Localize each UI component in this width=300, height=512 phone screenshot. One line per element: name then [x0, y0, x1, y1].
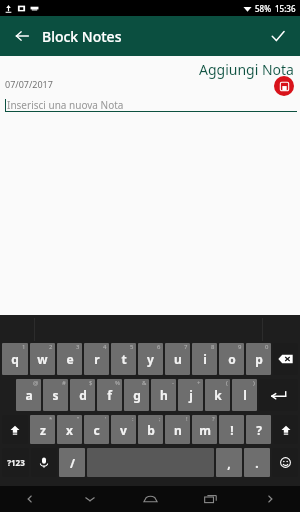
- staticText: 58%: [255, 3, 271, 14]
- staticText: c: [93, 422, 100, 438]
- button[interactable]: q: [2, 343, 28, 375]
- staticText: 7: [184, 343, 188, 351]
- button[interactable]: Hide keyboard: [60, 486, 120, 512]
- staticText: m: [199, 422, 211, 438]
- staticText: 15:36: [275, 3, 296, 14]
- staticText: k: [214, 387, 222, 403]
- button[interactable]: e: [57, 343, 82, 375]
- button[interactable]: o: [219, 343, 244, 375]
- staticText: x: [66, 422, 73, 438]
- button[interactable]: Save: [274, 76, 294, 96]
- staticText: (: [226, 379, 228, 387]
- staticText: 6: [157, 343, 161, 351]
- staticText: .: [255, 455, 259, 471]
- staticText: ): [253, 379, 255, 387]
- staticText: ": [77, 415, 80, 423]
- button[interactable]: /: [59, 448, 85, 477]
- button[interactable]: Shift: [273, 415, 298, 444]
- button[interactable]: n: [165, 415, 190, 444]
- staticText: #: [62, 379, 66, 387]
- button[interactable]: !: [219, 415, 244, 444]
- button[interactable]: Home: [120, 486, 180, 512]
- staticText: h: [160, 387, 168, 403]
- button[interactable]: k: [205, 379, 230, 411]
- button[interactable]: a: [16, 379, 41, 411]
- button[interactable]: g: [124, 379, 149, 411]
- staticText: -: [172, 379, 174, 387]
- staticText: z: [40, 422, 46, 438]
- button[interactable]: Backspace: [273, 343, 298, 375]
- staticText: ?123: [7, 457, 25, 468]
- button[interactable]: ?123: [2, 448, 29, 477]
- button[interactable]: w: [30, 343, 55, 375]
- staticText: $: [89, 379, 93, 387]
- button[interactable]: z: [30, 415, 55, 444]
- staticText: b: [147, 422, 155, 438]
- button[interactable]: c: [84, 415, 109, 444]
- staticText: ?: [256, 422, 262, 438]
- button[interactable]: i: [192, 343, 217, 375]
- button[interactable]: h: [151, 379, 176, 411]
- button[interactable]: Recent apps: [180, 486, 240, 512]
- button[interactable]: Previous: [0, 486, 60, 512]
- button[interactable]: l: [232, 379, 257, 411]
- button[interactable]: Shift: [2, 415, 28, 444]
- staticText: t: [121, 351, 127, 367]
- staticText: %: [115, 379, 120, 387]
- staticText: 2: [49, 343, 53, 351]
- button[interactable]: f: [97, 379, 122, 411]
- button[interactable]: v: [111, 415, 136, 444]
- staticText: 9: [238, 343, 242, 351]
- button[interactable]: .: [244, 448, 270, 477]
- staticText: r: [94, 351, 100, 367]
- button[interactable]: r: [84, 343, 109, 375]
- staticText: !: [230, 422, 234, 438]
- button[interactable]: t: [111, 343, 136, 375]
- staticText: !: [186, 415, 188, 423]
- button[interactable]: Emoji: [272, 448, 298, 477]
- staticText: w: [37, 351, 48, 367]
- button[interactable]: Back: [6, 20, 38, 52]
- staticText: 0: [265, 343, 269, 351]
- staticText: 07/07/2017: [5, 78, 53, 90]
- staticText: l: [243, 387, 247, 403]
- button[interactable]: Enter: [259, 379, 298, 411]
- staticText: 8: [211, 343, 215, 351]
- button[interactable]: m: [192, 415, 217, 444]
- staticText: y: [147, 351, 154, 367]
- staticText: @: [33, 379, 39, 387]
- staticText: s: [52, 387, 59, 403]
- staticText: d: [79, 387, 87, 403]
- staticText: g: [133, 387, 141, 403]
- staticText: Inserisci una nuova Nota: [7, 98, 124, 112]
- staticText: j: [189, 387, 193, 403]
- staticText: 3: [76, 343, 80, 351]
- button[interactable]: x: [57, 415, 82, 444]
- button[interactable]: b: [138, 415, 163, 444]
- staticText: i: [203, 351, 207, 367]
- staticText: &: [142, 379, 147, 387]
- staticText: Block Notes: [42, 27, 122, 46]
- button[interactable]: p: [246, 343, 271, 375]
- staticText: ,: [227, 455, 231, 471]
- button[interactable]: s: [43, 379, 68, 411]
- button[interactable]: u: [165, 343, 190, 375]
- button[interactable]: Next: [240, 486, 300, 512]
- button[interactable]: Save note: [262, 20, 294, 52]
- staticText: v: [120, 422, 127, 438]
- button[interactable]: ,: [216, 448, 242, 477]
- button[interactable]: y: [138, 343, 163, 375]
- staticText: f: [107, 387, 112, 403]
- button[interactable]: ?: [246, 415, 271, 444]
- staticText: e: [66, 351, 74, 367]
- button[interactable]: d: [70, 379, 95, 411]
- staticText: p: [255, 351, 263, 367]
- staticText: ;: [159, 415, 161, 423]
- button[interactable]: Voice input: [31, 448, 57, 477]
- button[interactable]: j: [178, 379, 203, 411]
- staticText: n: [174, 422, 182, 438]
- staticText: q: [11, 351, 19, 367]
- staticText: Aggiungi Nota: [199, 60, 294, 79]
